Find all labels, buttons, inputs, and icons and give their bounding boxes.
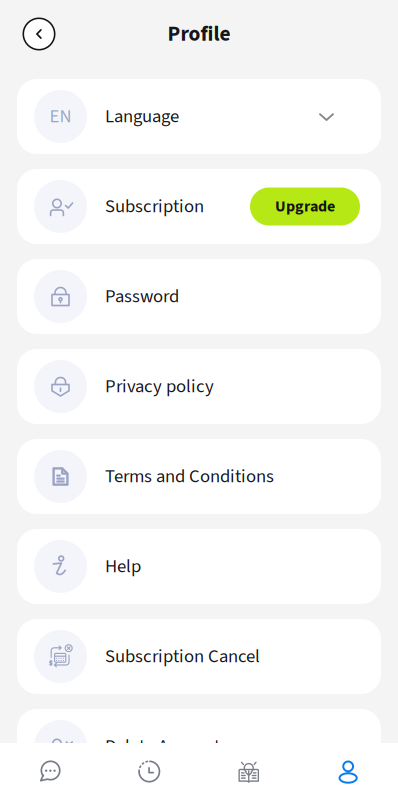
staticText: Upgrade (275, 195, 335, 218)
staticText: Subscription (105, 193, 204, 220)
button[interactable]: Back (17, 12, 61, 56)
button[interactable]: Learn (199, 743, 298, 800)
staticText: Profile (167, 19, 230, 49)
button[interactable]: Messages (0, 743, 99, 800)
staticText: Terms and Conditions (105, 463, 274, 490)
button[interactable]: Profile (298, 743, 398, 800)
staticText: Help (105, 553, 141, 580)
staticText: Privacy policy (105, 373, 214, 400)
staticText: Language (105, 103, 179, 130)
button[interactable]: EN (17, 79, 381, 154)
staticText: Password (105, 283, 179, 310)
button[interactable]: Privacy policy (17, 349, 381, 424)
button[interactable]: Subscription (17, 169, 381, 244)
button[interactable]: Help (17, 529, 381, 604)
staticText: Subscription Cancel (105, 643, 260, 670)
button[interactable]: Password (17, 259, 381, 334)
button[interactable]: Subscription Cancel (17, 619, 381, 694)
staticText: EN (49, 103, 71, 130)
button[interactable]: Terms and Conditions (17, 439, 381, 514)
button[interactable]: Upgrade (250, 187, 360, 225)
button[interactable]: History (99, 743, 199, 800)
staticText: Delete Account (105, 733, 220, 760)
button[interactable]: Delete Account (17, 709, 381, 784)
